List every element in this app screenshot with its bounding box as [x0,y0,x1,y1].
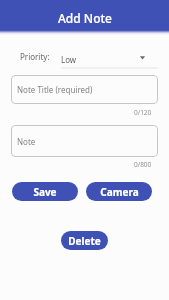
staticText: Add Note [58,10,112,26]
button[interactable]: Note Title (required) [11,75,158,104]
staticText: Low [61,54,77,65]
staticText: Camera [100,185,139,199]
button[interactable]: Note [11,125,158,157]
button[interactable]: Low [61,48,158,65]
staticText: Save [33,185,57,199]
button[interactable]: Save [12,182,78,201]
staticText: 0/800 [134,160,152,169]
staticText: Note [17,136,36,147]
staticText: Delete [68,234,101,248]
staticText: 0/120 [134,108,152,117]
button[interactable]: Camera [86,182,152,201]
button[interactable]: Delete [61,231,108,250]
staticText: Note Title (required) [17,84,93,95]
staticText: Priority: [20,51,50,62]
